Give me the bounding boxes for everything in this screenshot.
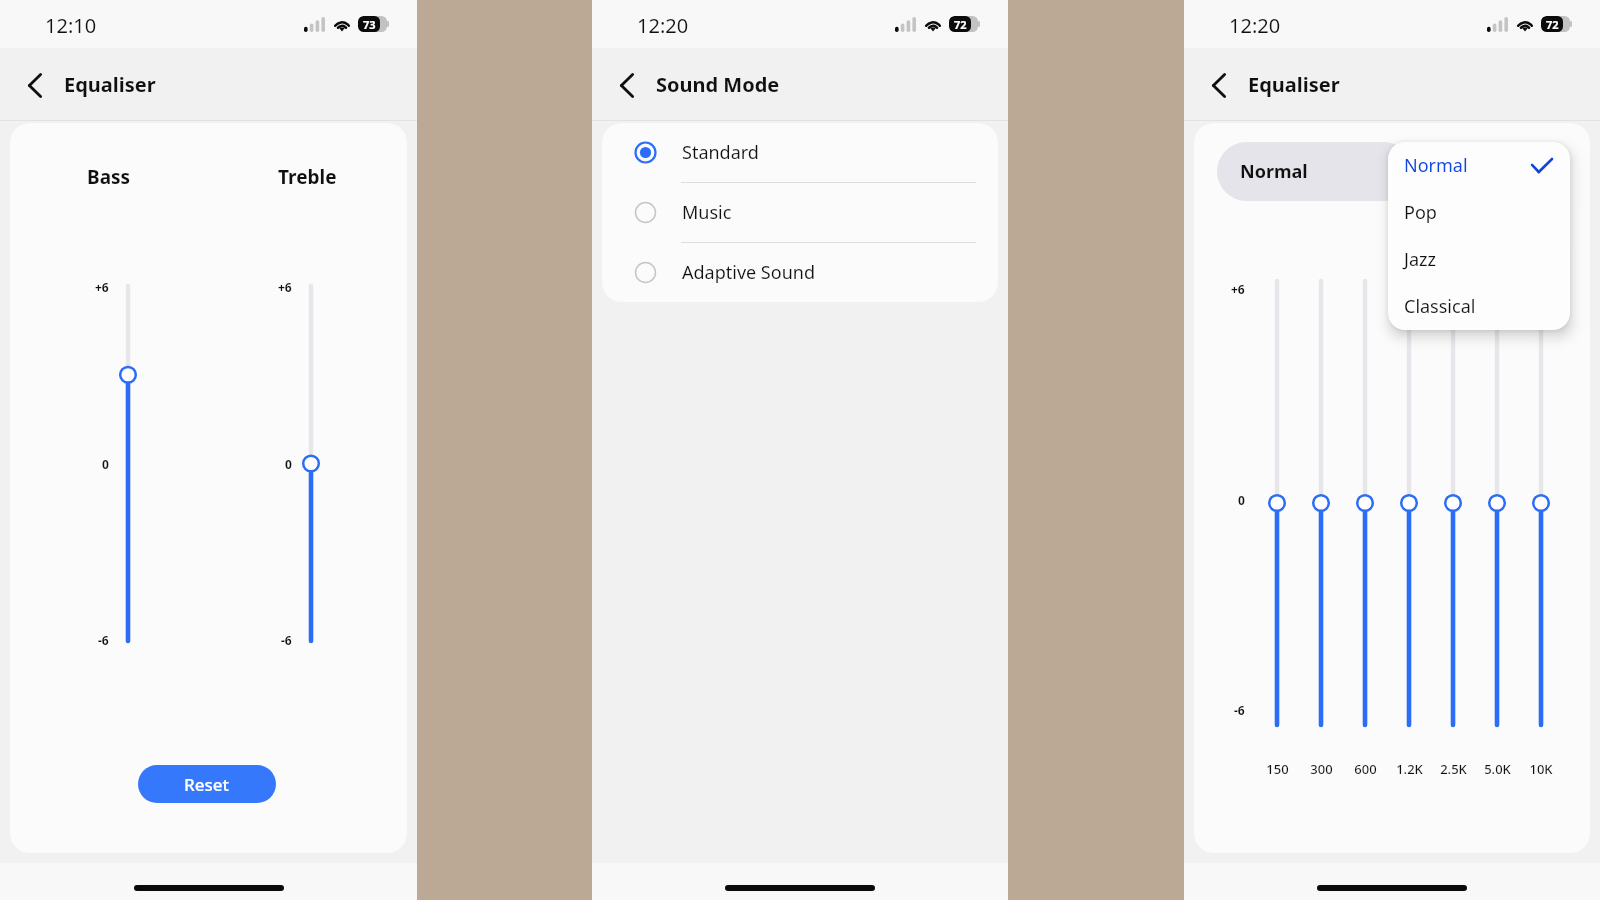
button[interactable]: Music: [602, 183, 998, 242]
staticText: Normal: [1240, 159, 1308, 184]
button[interactable]: Standard: [602, 123, 998, 182]
staticText: +6: [278, 279, 292, 295]
staticText: -6: [281, 632, 292, 648]
button[interactable]: 600 Hz band level: [1353, 272, 1377, 734]
button[interactable]: 150 Hz band level: [1265, 272, 1289, 734]
staticText: Classical: [1404, 294, 1476, 319]
staticText: Reset: [184, 773, 230, 796]
staticText: +6: [95, 279, 109, 295]
staticText: 72: [954, 17, 967, 32]
button[interactable]: 2.5K Hz band level: [1441, 272, 1465, 734]
staticText: Adaptive Sound: [682, 260, 815, 285]
staticText: 300: [1310, 760, 1333, 778]
button[interactable]: Adaptive Sound: [602, 243, 998, 302]
button[interactable]: Back: [1197, 63, 1241, 107]
staticText: 0: [285, 456, 292, 472]
staticText: 12:10: [45, 12, 97, 39]
staticText: 5.0K: [1484, 760, 1511, 778]
button[interactable]: 10K Hz band level: [1529, 272, 1553, 734]
staticText: 150: [1266, 760, 1289, 778]
staticText: 2.5K: [1440, 760, 1467, 778]
button[interactable]: Pop: [1388, 189, 1570, 236]
staticText: Treble: [278, 164, 337, 190]
staticText: Music: [682, 200, 732, 225]
staticText: Equaliser: [1248, 71, 1340, 98]
staticText: 1.2K: [1396, 760, 1423, 778]
button[interactable]: Classical: [1388, 283, 1570, 330]
staticText: 600: [1354, 760, 1377, 778]
staticText: Normal: [1404, 153, 1468, 178]
button[interactable]: Back: [13, 63, 57, 107]
button[interactable]: Jazz: [1388, 236, 1570, 283]
button[interactable]: Treble level: [299, 277, 323, 650]
button[interactable]: 1.2K Hz band level: [1397, 272, 1421, 734]
staticText: 0: [1238, 492, 1245, 508]
staticText: -6: [1234, 702, 1245, 718]
staticText: Pop: [1404, 200, 1437, 225]
staticText: Jazz: [1404, 247, 1436, 272]
staticText: 12:20: [1229, 12, 1281, 39]
staticText: Equaliser: [64, 71, 156, 98]
button[interactable]: Bass level: [116, 277, 140, 650]
staticText: 12:20: [637, 12, 689, 39]
staticText: -6: [98, 632, 109, 648]
staticText: 0: [102, 456, 109, 472]
staticText: 73: [363, 17, 376, 32]
staticText: 72: [1546, 17, 1559, 32]
button[interactable]: 5.0K Hz band level: [1485, 272, 1509, 734]
button[interactable]: Back: [605, 63, 649, 107]
button[interactable]: Normal: [1217, 142, 1413, 201]
button[interactable]: Normal: [1388, 142, 1570, 189]
button[interactable]: 300 Hz band level: [1309, 272, 1333, 734]
staticText: Standard: [682, 140, 759, 165]
button[interactable]: Reset: [138, 765, 276, 803]
staticText: 10K: [1529, 760, 1553, 778]
staticText: Bass: [87, 164, 131, 190]
staticText: +6: [1231, 281, 1245, 297]
staticText: Sound Mode: [656, 71, 780, 98]
